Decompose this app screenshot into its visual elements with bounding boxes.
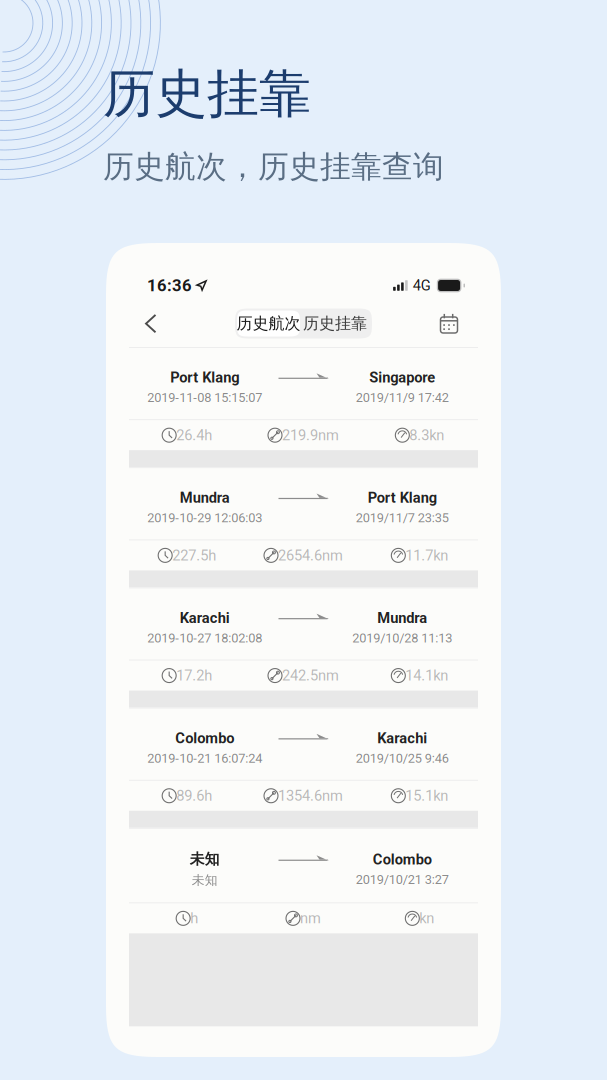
button[interactable]: Calendar: [418, 305, 460, 341]
staticText: 17.2h: [176, 667, 212, 684]
staticText: 2019/11/9 17:42: [356, 390, 449, 405]
staticText: 2019/10/25 9:46: [356, 751, 449, 766]
staticText: 未知: [192, 872, 218, 888]
staticText: 历史挂靠: [303, 314, 367, 333]
staticText: 2019/10/21 3:27: [356, 872, 449, 887]
staticText: Port Klang: [170, 369, 239, 386]
staticText: 8.3kn: [409, 427, 444, 444]
staticText: 242.5nm: [282, 667, 339, 684]
staticText: Colombo: [175, 730, 234, 747]
staticText: Karachi: [377, 730, 427, 747]
staticText: 2654.6nm: [278, 547, 343, 564]
staticText: 历史航次: [236, 314, 300, 333]
staticText: 2019/10/28 11:13: [352, 631, 452, 646]
staticText: Colombo: [373, 851, 432, 868]
staticText: 2019-10-27 18:02:08: [147, 631, 262, 646]
staticText: 14.1kn: [405, 667, 448, 684]
staticText: 11.7kn: [405, 547, 448, 564]
staticText: h: [190, 910, 198, 927]
button[interactable]: 历史航次: [237, 310, 300, 336]
staticText: 2019/11/7 23:35: [356, 510, 449, 525]
staticText: 2019-10-21 16:07:24: [147, 751, 262, 766]
staticText: 16:36: [147, 276, 192, 295]
staticText: 219.9nm: [282, 427, 339, 444]
staticText: kn: [419, 910, 434, 927]
staticText: 历史航次，历史挂靠查询: [103, 148, 444, 186]
staticText: nm: [300, 910, 321, 927]
staticText: 1354.6nm: [278, 787, 343, 804]
staticText: Mundra: [180, 489, 230, 506]
staticText: 历史挂靠: [103, 62, 311, 126]
button[interactable]: Back: [145, 305, 187, 341]
staticText: Mundra: [377, 609, 427, 627]
staticText: 15.1kn: [405, 787, 448, 804]
staticText: 未知: [190, 850, 220, 868]
staticText: Singapore: [369, 369, 435, 386]
staticText: Port Klang: [368, 489, 437, 506]
staticText: 2019-11-08 15:15:07: [147, 390, 262, 405]
staticText: 26.4h: [176, 427, 212, 444]
button[interactable]: 历史挂靠: [300, 310, 370, 336]
staticText: 2019-10-29 12:06:03: [147, 510, 262, 525]
staticText: 4G: [413, 277, 431, 294]
staticText: 89.6h: [176, 787, 212, 804]
staticText: 227.5h: [172, 547, 216, 564]
staticText: Karachi: [180, 609, 230, 627]
